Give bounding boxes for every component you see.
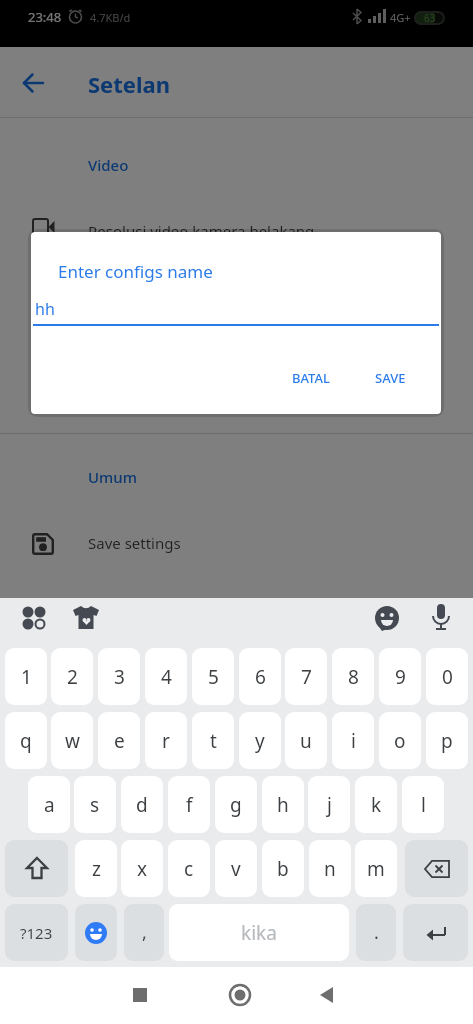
- button[interactable]: [24, 74, 43, 92]
- button[interactable]: q: [5, 712, 47, 769]
- button[interactable]: n: [309, 840, 351, 897]
- button[interactable]: g: [215, 776, 257, 833]
- button[interactable]: c: [168, 840, 210, 897]
- button[interactable]: e: [98, 712, 140, 769]
- button[interactable]: [226, 981, 254, 1009]
- staticText: Save settings: [88, 533, 181, 553]
- button[interactable]: SAVE: [357, 360, 423, 396]
- button[interactable]: u: [285, 712, 327, 769]
- staticText: 23:48: [28, 8, 62, 26]
- staticText: 0: [442, 664, 453, 690]
- staticText: j: [327, 792, 332, 818]
- staticText: 63: [424, 11, 436, 25]
- button[interactable]: k: [355, 776, 397, 833]
- button[interactable]: y: [239, 712, 281, 769]
- staticText: s: [90, 792, 100, 818]
- staticText: n: [324, 856, 336, 882]
- staticText: x: [137, 856, 148, 882]
- button[interactable]: m: [355, 840, 397, 897]
- staticText: SAVE: [375, 369, 406, 387]
- button[interactable]: o: [379, 712, 421, 769]
- staticText: 1: [21, 664, 32, 690]
- staticText: 8: [348, 664, 359, 690]
- staticText: m: [367, 856, 385, 882]
- button[interactable]: 4: [145, 648, 187, 705]
- staticText: l: [421, 792, 426, 818]
- button[interactable]: 1: [5, 648, 47, 705]
- button[interactable]: z: [75, 840, 117, 897]
- button[interactable]: [126, 981, 154, 1009]
- button[interactable]: l: [402, 776, 444, 833]
- button[interactable]: kika: [169, 904, 349, 961]
- button[interactable]: [403, 904, 468, 961]
- staticText: 4: [161, 664, 172, 690]
- button[interactable]: 0: [426, 648, 468, 705]
- staticText: q: [20, 728, 32, 754]
- button[interactable]: d: [121, 776, 163, 833]
- staticText: kika: [241, 920, 277, 946]
- button[interactable]: 2: [51, 648, 93, 705]
- button[interactable]: [431, 604, 451, 632]
- staticText: 3: [114, 664, 125, 690]
- button[interactable]: [374, 606, 400, 632]
- staticText: e: [114, 728, 125, 754]
- button[interactable]: p: [426, 712, 468, 769]
- staticText: o: [394, 728, 406, 754]
- button[interactable]: 7: [285, 648, 327, 705]
- staticText: hh: [35, 298, 55, 320]
- button[interactable]: f: [168, 776, 210, 833]
- button[interactable]: [75, 904, 117, 961]
- staticText: r: [162, 728, 170, 754]
- staticText: w: [65, 728, 80, 754]
- button[interactable]: a: [28, 776, 70, 833]
- staticText: 6: [255, 664, 266, 690]
- button[interactable]: [313, 981, 341, 1009]
- staticText: a: [44, 792, 55, 818]
- button[interactable]: 6: [239, 648, 281, 705]
- staticText: BATAL: [292, 369, 330, 387]
- staticText: c: [184, 856, 194, 882]
- staticText: Resolusi video kamera belakang: [88, 221, 315, 241]
- button[interactable]: 3: [98, 648, 140, 705]
- button[interactable]: .: [356, 904, 396, 961]
- button[interactable]: h: [262, 776, 304, 833]
- staticText: h: [277, 792, 289, 818]
- button[interactable]: [72, 605, 100, 631]
- staticText: ,: [142, 920, 147, 945]
- button[interactable]: ,: [124, 904, 164, 961]
- button[interactable]: j: [308, 776, 350, 833]
- button[interactable]: w: [51, 712, 93, 769]
- button[interactable]: s: [74, 776, 116, 833]
- staticText: ?123: [20, 923, 53, 943]
- staticText: f: [186, 792, 193, 818]
- button[interactable]: t: [192, 712, 234, 769]
- button[interactable]: BATAL: [275, 360, 347, 396]
- staticText: u: [300, 728, 312, 754]
- staticText: y: [255, 728, 265, 754]
- button[interactable]: 8: [332, 648, 374, 705]
- staticText: 4.7KB/d: [90, 10, 131, 25]
- staticText: Setelan: [88, 69, 170, 99]
- staticText: 2: [67, 664, 78, 690]
- staticText: b: [277, 856, 289, 882]
- button[interactable]: 9: [379, 648, 421, 705]
- button[interactable]: [405, 840, 468, 897]
- button[interactable]: b: [262, 840, 304, 897]
- staticText: Enter configs name: [58, 260, 213, 283]
- staticText: k: [371, 792, 382, 818]
- staticText: 9: [395, 664, 406, 690]
- staticText: v: [231, 856, 241, 882]
- button[interactable]: [5, 840, 68, 897]
- button[interactable]: x: [121, 840, 163, 897]
- button[interactable]: ?123: [5, 904, 68, 961]
- button[interactable]: 5: [192, 648, 234, 705]
- staticText: 7: [301, 664, 312, 690]
- button[interactable]: v: [215, 840, 257, 897]
- button[interactable]: [20, 604, 48, 632]
- button[interactable]: r: [145, 712, 187, 769]
- staticText: p: [441, 728, 453, 754]
- staticText: t: [210, 728, 217, 754]
- button[interactable]: i: [332, 712, 374, 769]
- staticText: .: [374, 920, 379, 945]
- staticText: i: [351, 728, 356, 754]
